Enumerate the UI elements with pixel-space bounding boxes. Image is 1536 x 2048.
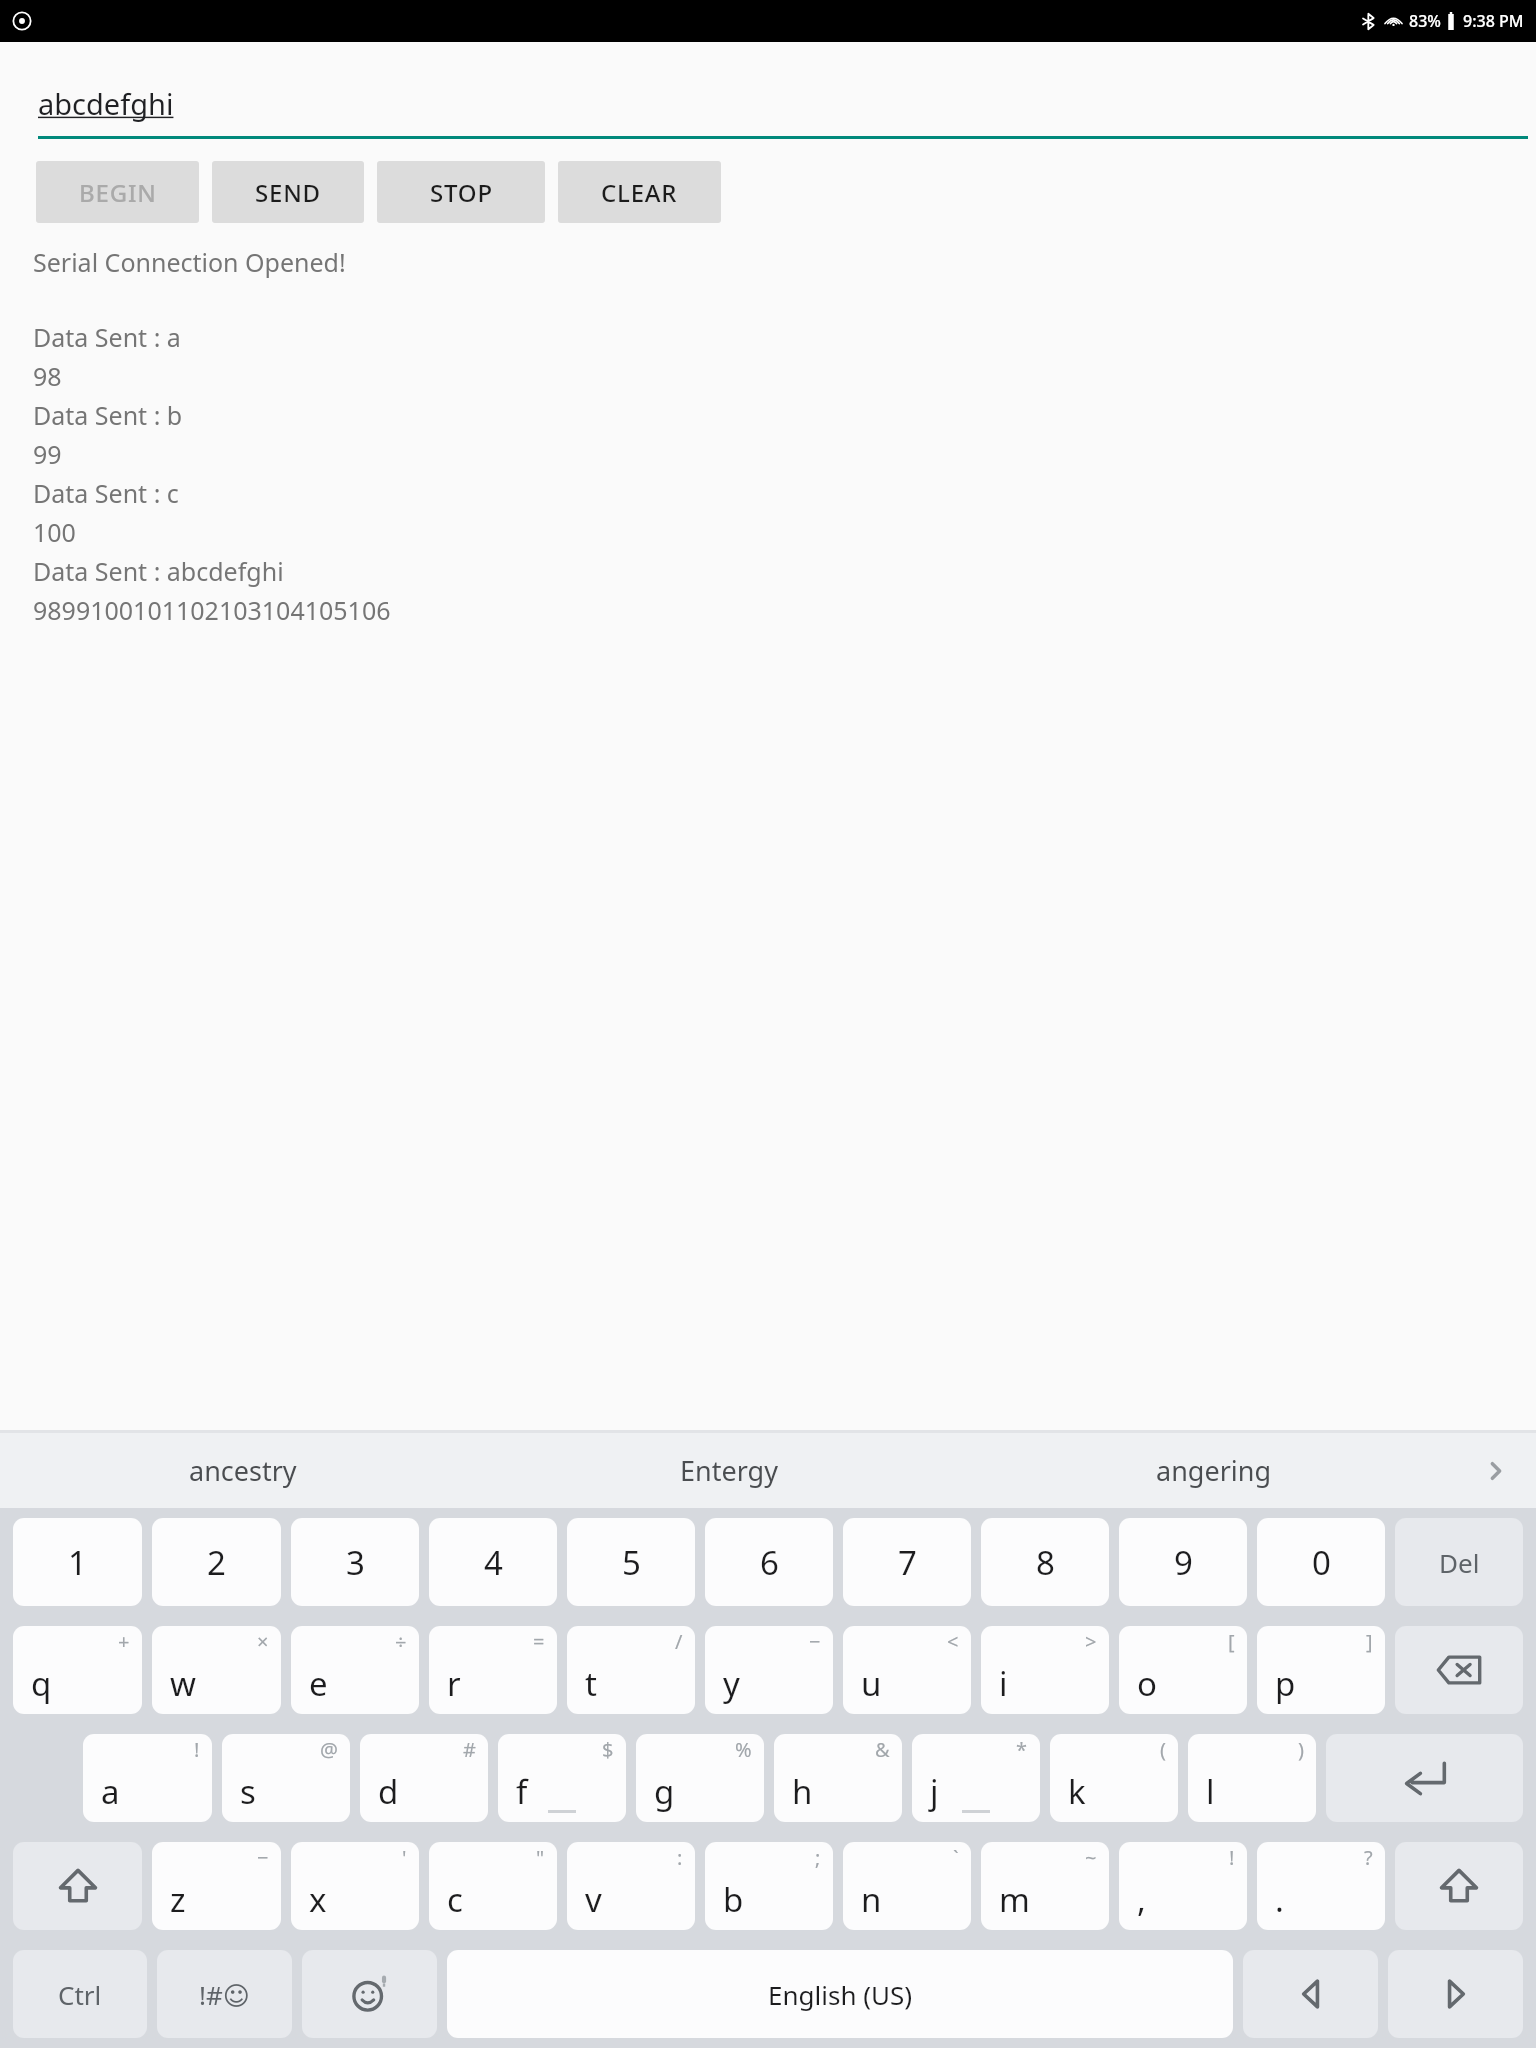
button[interactable]: [ xyxy=(1119,1626,1247,1714)
staticText: v xyxy=(585,1877,602,1922)
button[interactable]: 6 xyxy=(705,1518,833,1606)
button[interactable]: < xyxy=(843,1626,971,1714)
button[interactable]: Del xyxy=(1395,1518,1523,1606)
staticText: w xyxy=(170,1661,196,1706)
button[interactable]: ] xyxy=(1257,1626,1385,1714)
button[interactable]: − xyxy=(705,1626,833,1714)
button[interactable]: Move cursor right xyxy=(1388,1950,1523,2038)
staticText: r xyxy=(447,1661,461,1706)
button[interactable]: Shift xyxy=(13,1842,142,1930)
button[interactable]: ! xyxy=(83,1734,212,1822)
staticText: 8 xyxy=(1036,1540,1055,1585)
button[interactable]: # xyxy=(360,1734,488,1822)
staticText: 0 xyxy=(1312,1540,1331,1585)
staticText: BEGIN xyxy=(79,176,157,209)
staticText: : xyxy=(677,1844,683,1871)
staticText: angering xyxy=(1156,1452,1272,1489)
button[interactable]: " xyxy=(429,1842,557,1930)
button[interactable]: ! xyxy=(1119,1842,1247,1930)
button[interactable]: ' xyxy=(291,1842,419,1930)
staticText: Data Sent : c xyxy=(33,476,179,510)
staticText: 7 xyxy=(898,1540,917,1585)
staticText: f xyxy=(516,1769,528,1814)
staticText: 1 xyxy=(68,1540,87,1585)
staticText: k xyxy=(1068,1769,1086,1814)
button[interactable]: ÷ xyxy=(291,1626,419,1714)
button[interactable]: 3 xyxy=(291,1518,419,1606)
staticText: j xyxy=(930,1769,939,1814)
button[interactable]: 0 xyxy=(1257,1518,1385,1606)
button[interactable]: 8 xyxy=(981,1518,1109,1606)
staticText: ! xyxy=(1229,1844,1235,1871)
staticText: @ xyxy=(320,1736,338,1763)
button[interactable]: SEND xyxy=(212,161,364,223)
staticText: + xyxy=(118,1628,130,1655)
button[interactable]: / xyxy=(567,1626,695,1714)
button[interactable]: & xyxy=(774,1734,902,1822)
button[interactable]: Ctrl xyxy=(13,1950,147,2038)
button[interactable]: − xyxy=(152,1842,281,1930)
button[interactable]: Move cursor left xyxy=(1243,1950,1378,2038)
button[interactable]: CLEAR xyxy=(558,161,721,223)
button[interactable]: English (US) xyxy=(447,1950,1233,2038)
button[interactable]: ? xyxy=(1257,1842,1385,1930)
button[interactable]: 5 xyxy=(567,1518,695,1606)
staticText: abcdefghi xyxy=(38,84,174,123)
staticText: $ xyxy=(602,1736,614,1763)
button[interactable]: × xyxy=(152,1626,281,1714)
staticText: Entergy xyxy=(680,1452,778,1489)
staticText: e xyxy=(309,1661,328,1706)
staticText: < xyxy=(947,1628,959,1655)
button[interactable]: 4 xyxy=(429,1518,557,1606)
button[interactable]: BEGIN xyxy=(36,161,199,223)
button[interactable]: * xyxy=(912,1734,1040,1822)
staticText: − xyxy=(257,1844,269,1871)
staticText: # xyxy=(463,1736,476,1763)
button[interactable]: @ xyxy=(222,1734,350,1822)
staticText: & xyxy=(875,1736,890,1763)
button[interactable]: Shift xyxy=(1395,1842,1523,1930)
staticText: CLEAR xyxy=(601,176,678,209)
staticText: 100 xyxy=(33,515,76,549)
button[interactable]: % xyxy=(636,1734,764,1822)
button[interactable]: !#☺ xyxy=(157,1950,292,2038)
button[interactable]: > xyxy=(981,1626,1109,1714)
button[interactable]: STOP xyxy=(377,161,545,223)
button[interactable]: : xyxy=(567,1842,695,1930)
button[interactable]: ; xyxy=(705,1842,833,1930)
button[interactable]: ) xyxy=(1188,1734,1316,1822)
button[interactable]: angering xyxy=(971,1433,1456,1508)
button[interactable]: ~ xyxy=(981,1842,1109,1930)
staticText: ' xyxy=(402,1844,407,1871)
staticText: % xyxy=(735,1736,752,1763)
button[interactable]: $ xyxy=(498,1734,626,1822)
staticText: 83% xyxy=(1409,10,1441,32)
button[interactable]: ancestry xyxy=(0,1433,486,1508)
staticText: ! xyxy=(194,1736,200,1763)
staticText: 9:38 PM xyxy=(1463,10,1524,32)
button[interactable]: + xyxy=(13,1626,142,1714)
button[interactable]: = xyxy=(429,1626,557,1714)
button[interactable]: Enter xyxy=(1326,1734,1523,1822)
button[interactable]: 7 xyxy=(843,1518,971,1606)
staticText: 98 xyxy=(33,359,62,393)
staticText: h xyxy=(792,1769,813,1814)
staticText: . xyxy=(1275,1877,1284,1922)
button[interactable]: More suggestions xyxy=(1456,1433,1536,1508)
staticText: ÷ xyxy=(395,1628,407,1655)
button[interactable]: Entergy xyxy=(486,1433,971,1508)
staticText: ; xyxy=(815,1844,821,1871)
button[interactable]: 2 xyxy=(152,1518,281,1606)
staticText: Data Sent : a xyxy=(33,320,181,354)
button[interactable]: Backspace xyxy=(1395,1626,1523,1714)
button[interactable]: ( xyxy=(1050,1734,1178,1822)
staticText: 3 xyxy=(346,1540,365,1585)
staticText: − xyxy=(809,1628,821,1655)
button[interactable]: Emoji xyxy=(302,1950,437,2038)
button[interactable]: ` xyxy=(843,1842,971,1930)
staticText: Del xyxy=(1439,1545,1480,1580)
button[interactable]: 9 xyxy=(1119,1518,1247,1606)
staticText: ) xyxy=(1298,1736,1304,1763)
staticText: 2 xyxy=(207,1540,226,1585)
button[interactable]: 1 xyxy=(13,1518,142,1606)
